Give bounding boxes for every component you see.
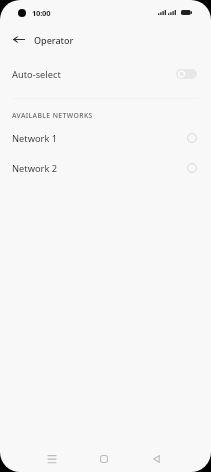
staticText: AVAILABLE NETWORKS — [12, 111, 93, 120]
button[interactable]: Network 2 — [0, 153, 211, 183]
staticText: 10:00 — [32, 8, 51, 18]
staticText: Network 1 — [12, 132, 58, 145]
staticText: Auto-select — [12, 68, 61, 81]
staticText: Operator — [34, 34, 74, 46]
button[interactable]: Home — [92, 447, 116, 471]
button[interactable]: Auto-select — [0, 56, 211, 92]
button[interactable]: Recent apps — [40, 447, 64, 471]
button[interactable]: Network 1 — [0, 123, 211, 153]
button[interactable]: Back — [144, 447, 168, 471]
staticText: Network 2 — [12, 162, 58, 175]
button[interactable]: Navigate up — [6, 27, 32, 53]
button[interactable]: Auto-select switch, off — [176, 69, 197, 79]
